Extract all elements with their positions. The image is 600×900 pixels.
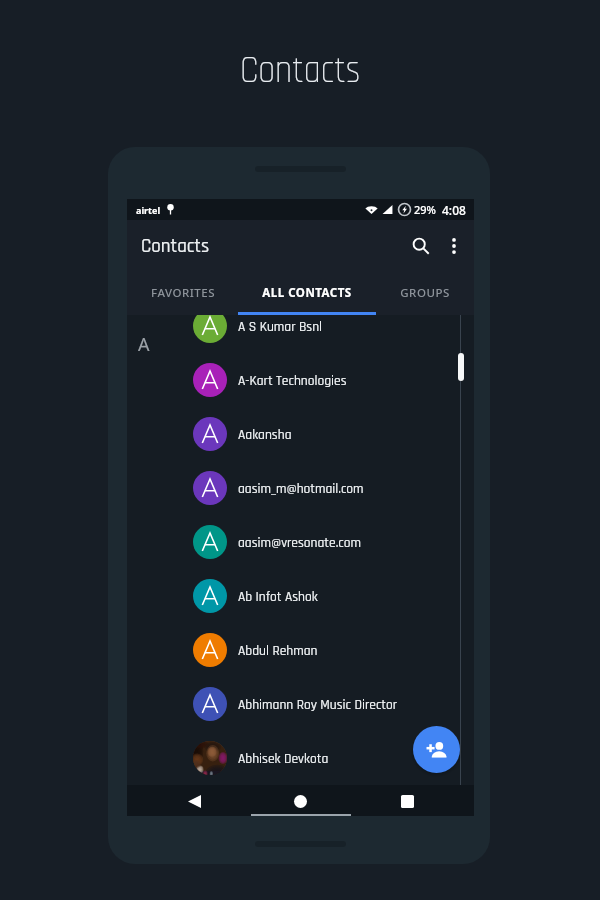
button[interactable]: Back <box>168 786 220 817</box>
staticText: aasim_m@hotmail.com <box>238 480 364 497</box>
button[interactable]: aasim_m@hotmail.com <box>127 461 474 515</box>
button[interactable]: More options <box>436 228 472 264</box>
staticText: 4:08 <box>442 202 466 218</box>
staticText: FAVORITES <box>151 285 215 301</box>
staticText: A <box>138 332 150 357</box>
button[interactable]: Home <box>274 786 326 817</box>
staticText: 29% <box>414 202 436 217</box>
staticText: Abhisek Devkota <box>238 750 329 767</box>
button[interactable]: Add contact <box>413 726 460 773</box>
staticText: airtel <box>136 204 161 216</box>
staticText: Ab Infot Ashok <box>238 588 318 605</box>
button[interactable]: Search <box>402 227 440 265</box>
button[interactable]: A-Kart Technologies <box>127 353 474 407</box>
staticText: GROUPS <box>400 285 450 301</box>
staticText: A-Kart Technologies <box>238 372 347 389</box>
button[interactable]: Ab Infot Ashok <box>127 569 474 623</box>
staticText: ALL CONTACTS <box>262 285 352 301</box>
button[interactable]: Abdul Rehman <box>127 623 474 677</box>
button[interactable]: Recents <box>381 786 433 817</box>
staticText: Abdul Rehman <box>238 642 318 659</box>
staticText: Aakansha <box>238 426 292 443</box>
button[interactable]: A S Kumar Bsnl <box>127 315 474 353</box>
button[interactable]: Abhimann Roy Music Director <box>127 677 474 731</box>
button[interactable]: aasim@vresonate.com <box>127 515 474 569</box>
staticText: Abhimann Roy Music Director <box>238 696 398 713</box>
staticText: A S Kumar Bsnl <box>238 318 323 335</box>
button[interactable]: ALL CONTACTS <box>238 271 376 315</box>
staticText: aasim@vresonate.com <box>238 534 361 551</box>
staticText: Contacts <box>240 45 361 96</box>
staticText: Contacts <box>141 234 210 258</box>
button[interactable]: GROUPS <box>376 271 474 315</box>
button[interactable]: Abhisek Devkota <box>127 731 474 785</box>
button[interactable]: FAVORITES <box>127 271 238 315</box>
button[interactable]: Aakansha <box>127 407 474 461</box>
